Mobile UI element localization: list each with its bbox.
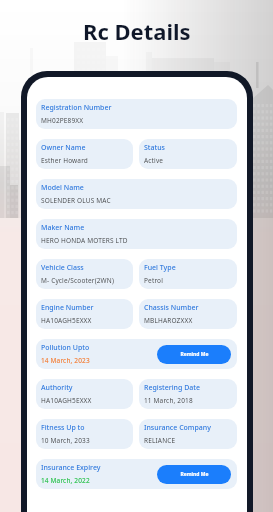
button[interactable]: Chassis Number	[139, 299, 237, 329]
staticText: 10 March, 2033	[41, 436, 90, 445]
staticText: Fuel Type	[144, 263, 176, 273]
staticText: HA10AGH5EXXX	[41, 316, 92, 325]
staticText: Fitness Up to	[41, 423, 85, 433]
staticText: Registering Date	[144, 383, 200, 393]
button[interactable]: Status	[139, 139, 237, 169]
staticText: Vehicle Class	[41, 263, 84, 273]
staticText: Maker Name	[41, 223, 85, 233]
button[interactable]: Authority	[36, 379, 133, 409]
button[interactable]: Maker Name	[36, 219, 237, 249]
staticText: HERO HONDA MOTERS LTD	[41, 236, 128, 245]
button[interactable]: Model Name	[36, 179, 237, 209]
button[interactable]: Fuel Type	[139, 259, 237, 289]
staticText: Rc Details	[83, 16, 191, 46]
button[interactable]: Fitness Up to	[36, 419, 133, 449]
staticText: Remind Me	[180, 351, 209, 358]
button[interactable]: Insurance Expirey	[36, 459, 237, 489]
staticText: 14 March, 2022	[41, 476, 90, 485]
button[interactable]: Registering Date	[139, 379, 237, 409]
button[interactable]: Engine Number	[36, 299, 133, 329]
staticText: Insurance Expirey	[41, 463, 101, 473]
staticText: Engine Number	[41, 303, 94, 313]
staticText: RELIANCE	[144, 436, 176, 445]
staticText: Status	[144, 143, 166, 153]
staticText: Esther Howard	[41, 156, 89, 165]
staticText: Remind Me	[180, 471, 209, 478]
staticText: MH02PE89XX	[41, 116, 84, 125]
staticText: HA10AGH5EXXX	[41, 396, 92, 405]
staticText: Authority	[41, 383, 73, 393]
button[interactable]: Owner Name	[36, 139, 133, 169]
button[interactable]: Pollution Upto	[36, 339, 237, 369]
staticText: Chassis Number	[144, 303, 199, 313]
staticText: Model Name	[41, 183, 84, 193]
button[interactable]: Insurance Company	[139, 419, 237, 449]
staticText: Pollution Upto	[41, 343, 90, 353]
staticText: Insurance Company	[144, 423, 211, 433]
staticText: 11 March, 2018	[144, 396, 193, 405]
button[interactable]: Remind Me	[157, 465, 231, 484]
staticText: 14 March, 2023	[41, 356, 90, 365]
button[interactable]: Remind Me	[157, 345, 231, 364]
staticText: M- Cycle/Scooter(2WN)	[41, 276, 114, 285]
button[interactable]: Registration Number	[36, 99, 237, 129]
staticText: Petrol	[144, 276, 164, 285]
staticText: Active	[144, 156, 164, 165]
staticText: SOLENDER OLUS MAC	[41, 196, 111, 205]
staticText: MBLHAROZXXX	[144, 316, 193, 325]
button[interactable]: Vehicle Class	[36, 259, 133, 289]
staticText: Owner Name	[41, 143, 86, 153]
staticText: Registration Number	[41, 103, 112, 113]
